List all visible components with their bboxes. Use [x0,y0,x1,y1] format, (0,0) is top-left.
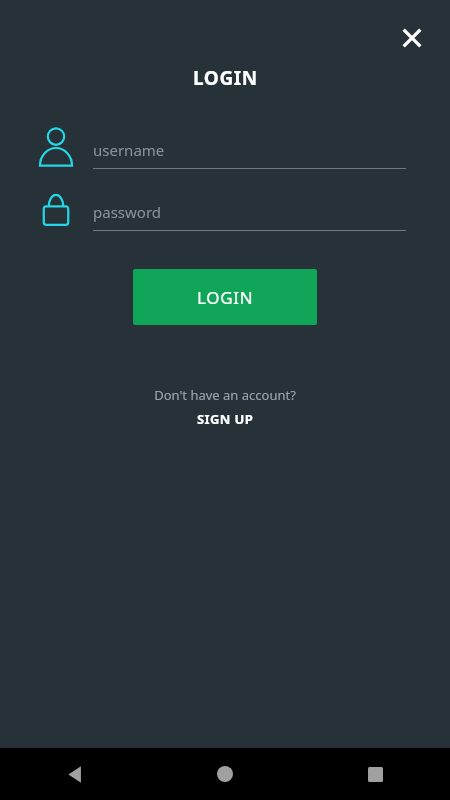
staticText: Don't have an account? [154,386,296,404]
button[interactable]: LOGIN [133,269,317,325]
button[interactable]: Close [390,16,434,60]
staticText: LOGIN [193,65,258,91]
button[interactable]: Back [0,748,150,800]
staticText: SIGN UP [197,410,254,428]
button[interactable]: password [93,195,406,231]
staticText: LOGIN [197,286,254,309]
button[interactable]: Recent apps [300,748,450,800]
staticText: username [93,140,165,160]
button[interactable]: username [93,133,406,169]
staticText: password [93,202,161,222]
button[interactable]: Home [150,748,300,800]
button[interactable]: SIGN UP [189,409,262,429]
